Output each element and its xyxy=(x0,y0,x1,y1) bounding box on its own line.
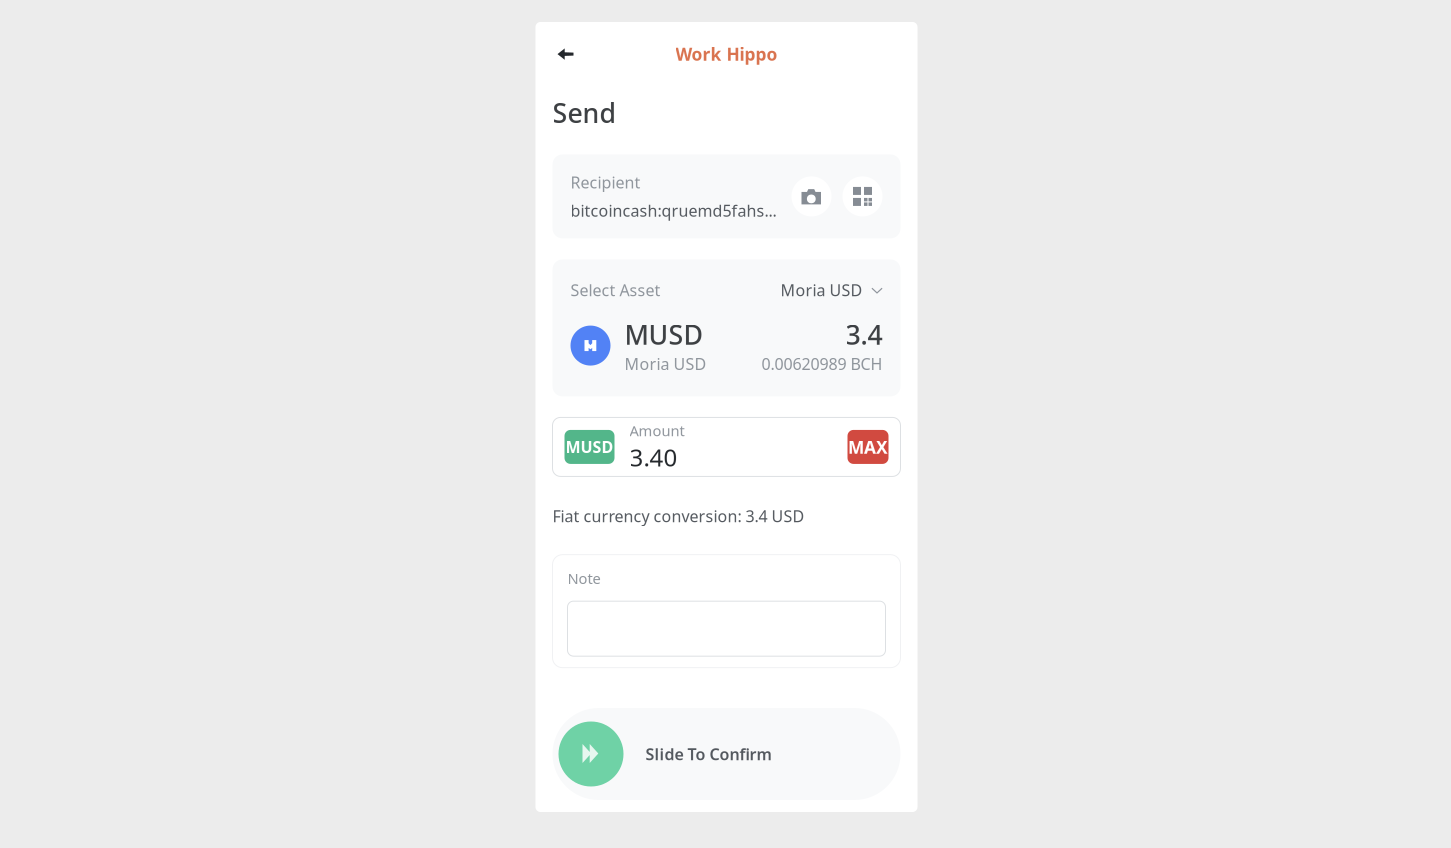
staticText: MUSD xyxy=(624,317,702,352)
button[interactable]: Back xyxy=(535,39,595,69)
button[interactable]: Recipient xyxy=(570,172,776,221)
staticText: Note xyxy=(567,569,600,588)
staticText: Amount xyxy=(629,421,684,440)
button[interactable]: Paste address xyxy=(842,176,882,216)
staticText: Moria USD xyxy=(780,279,862,301)
button[interactable]: Moria USD xyxy=(780,279,882,301)
staticText: Recipient xyxy=(570,172,640,193)
button[interactable]: Amount xyxy=(614,421,684,473)
staticText: Fiat currency conversion: 3.4 USD xyxy=(552,505,804,527)
staticText: Slide To Confirm xyxy=(645,743,771,765)
staticText: Select Asset xyxy=(570,279,660,301)
staticText: 3.40 xyxy=(629,441,677,473)
staticText: 3.4 xyxy=(845,317,882,352)
staticText: Work Hippo xyxy=(675,42,777,65)
button[interactable]: Slide To Confirm xyxy=(552,708,900,800)
button[interactable]: MAX xyxy=(847,430,888,464)
staticText: Moria USD xyxy=(624,353,706,374)
staticText: MAX xyxy=(848,435,888,458)
button[interactable]: Note xyxy=(567,601,885,656)
staticText: MUSD xyxy=(565,436,613,457)
staticText: bitcoincash:qruemd5fahs... xyxy=(570,200,776,221)
button[interactable]: Scan with camera xyxy=(791,176,831,216)
staticText: Send xyxy=(552,95,616,130)
staticText: 0.00620989 BCH xyxy=(761,353,882,374)
